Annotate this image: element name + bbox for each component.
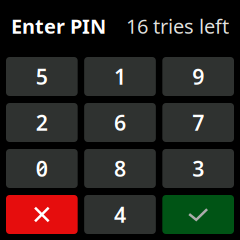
button[interactable]: 1 (84, 57, 156, 96)
staticText: 6 (114, 108, 126, 137)
staticText: 5 (36, 62, 48, 91)
button[interactable]: 9 (162, 57, 234, 96)
button[interactable]: 6 (84, 103, 156, 142)
staticText: 8 (114, 154, 126, 183)
button[interactable]: 5 (6, 57, 78, 96)
button[interactable]: 0 (6, 149, 78, 188)
staticText: 4 (114, 200, 126, 229)
staticText: Enter PIN (11, 13, 106, 39)
staticText: 16 tries left (126, 13, 229, 39)
staticText: 2 (36, 108, 48, 137)
button[interactable]: 4 (84, 195, 156, 234)
button[interactable]: 8 (84, 149, 156, 188)
staticText: 1 (114, 62, 126, 91)
button[interactable]: 7 (162, 103, 234, 142)
button[interactable]: Confirm (162, 195, 234, 234)
button[interactable]: Cancel (6, 195, 78, 234)
staticText: 7 (192, 108, 204, 137)
button[interactable]: 2 (6, 103, 78, 142)
staticText: 9 (192, 62, 204, 91)
button[interactable]: 3 (162, 149, 234, 188)
staticText: 3 (192, 154, 204, 183)
staticText: 0 (36, 154, 48, 183)
